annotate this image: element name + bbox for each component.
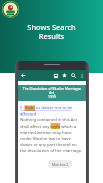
- button[interactable]: App logo: [2, 1, 19, 18]
- button[interactable]: Search: [69, 70, 78, 81]
- button[interactable]: Matches 2: [48, 160, 72, 168]
- staticText: Shows Search Results: [27, 22, 76, 41]
- staticText: Nothing contained in this Act shall affe…: [20, 117, 84, 153]
- button[interactable]: Back: [18, 70, 29, 81]
- button[interactable]: More options: [78, 70, 86, 81]
- staticText: Matches 2: [52, 162, 69, 167]
- staticText: 5. Right to dower not to be affected: [20, 105, 84, 116]
- button[interactable]: Save: [51, 70, 60, 81]
- staticText: The Dissolution of Muslim Marriages Act,…: [21, 86, 83, 99]
- button[interactable]: Favorite: [60, 70, 69, 81]
